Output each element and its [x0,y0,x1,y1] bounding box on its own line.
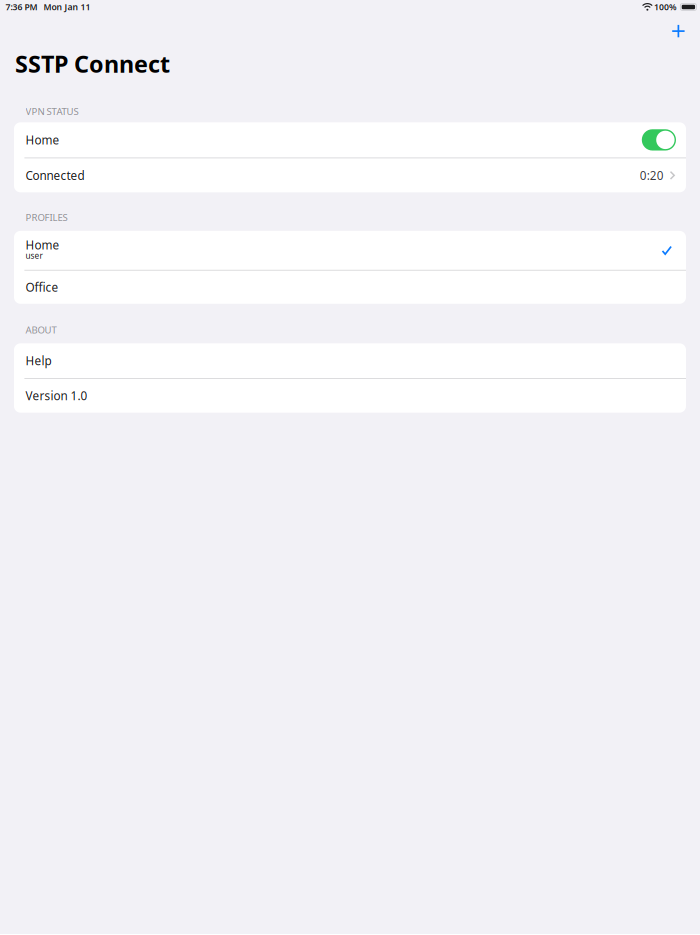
staticText: user [26,250,43,261]
button[interactable]: Office [14,271,686,304]
button[interactable]: Home VPN, on [14,122,686,157]
staticText: 0:20 [640,168,664,183]
staticText: Connected [26,168,85,183]
button[interactable]: Add profile [664,20,692,42]
staticText: PROFILES [26,211,68,223]
staticText: ABOUT [26,323,57,336]
staticText: 100% [654,1,677,13]
staticText: SSTP Connect [15,48,170,79]
button[interactable]: Home [14,231,686,270]
staticText: Home [26,237,60,253]
staticText: VPN STATUS [26,105,79,117]
staticText: Home [26,132,60,148]
staticText: Help [26,353,52,368]
staticText: 7:36 PM [5,1,37,13]
staticText: Mon Jan 11 [44,1,91,13]
staticText: Version 1.0 [26,388,88,404]
button[interactable]: Connected [14,158,686,192]
staticText: Office [26,279,59,295]
button[interactable]: Help [14,343,686,378]
